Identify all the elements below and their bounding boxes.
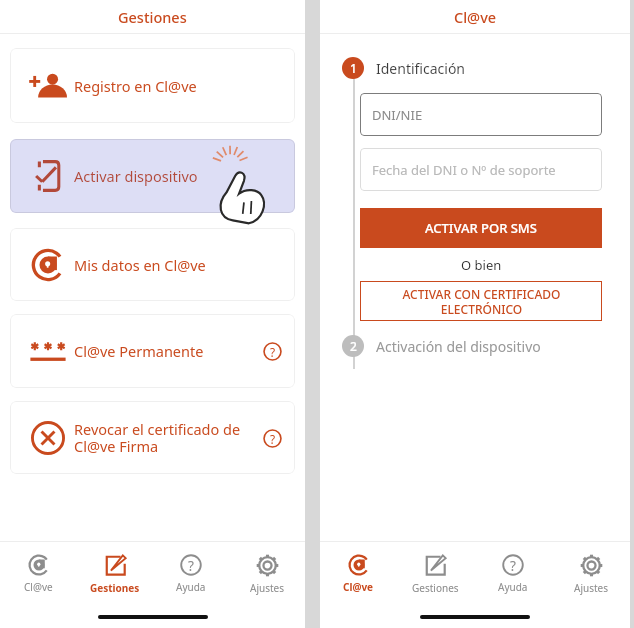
- staticText: Fecha del DNI o Nº de soporte: [372, 161, 556, 179]
- staticText: Activar dispositivo: [74, 166, 285, 186]
- staticText: 1: [350, 60, 357, 76]
- button[interactable]: Ayuda: [259, 425, 285, 451]
- staticText: Cl@ve: [343, 580, 374, 594]
- button[interactable]: Activar dispositivo: [10, 139, 295, 213]
- button[interactable]: ?: [153, 542, 229, 606]
- staticText: ?: [270, 431, 276, 447]
- staticText: O bien: [461, 256, 502, 274]
- staticText: ?: [188, 556, 194, 575]
- staticText: Cl@ve: [454, 7, 497, 27]
- button[interactable]: Ajustes: [229, 542, 305, 606]
- button[interactable]: Cl@ve: [320, 542, 397, 606]
- button[interactable]: Registro en Cl@ve: [10, 48, 295, 123]
- staticText: DNI/NIE: [372, 106, 423, 124]
- button[interactable]: Cl@ve Permanente: [10, 314, 295, 388]
- staticText: Gestiones: [90, 581, 140, 595]
- staticText: Gestiones: [118, 7, 187, 27]
- button[interactable]: Ayuda: [259, 338, 285, 364]
- staticText: Gestiones: [412, 581, 459, 595]
- button[interactable]: DNI/NIE: [360, 93, 602, 136]
- button[interactable]: ACTIVAR POR SMS: [360, 208, 602, 248]
- staticText: Ayuda: [498, 580, 528, 594]
- staticText: Activación del dispositivo: [376, 337, 541, 356]
- staticText: Mis datos en Cl@ve: [74, 255, 285, 275]
- staticText: Identificación: [376, 59, 466, 78]
- staticText: ACTIVAR POR SMS: [425, 219, 537, 237]
- button[interactable]: Ajustes: [552, 542, 630, 606]
- button[interactable]: ACTIVAR CON CERTIFICADO ELECTRÓNICO: [360, 281, 602, 321]
- staticText: Revocar el certificado de Cl@ve Firma: [74, 419, 259, 456]
- staticText: 2: [350, 338, 357, 354]
- staticText: Registro en Cl@ve: [74, 76, 285, 96]
- staticText: Ajustes: [250, 581, 284, 595]
- button[interactable]: Fecha del DNI o Nº de soporte: [360, 148, 602, 191]
- staticText: ?: [270, 344, 276, 360]
- button[interactable]: Gestiones: [77, 542, 153, 606]
- button[interactable]: ?: [474, 542, 552, 606]
- staticText: Cl@ve: [24, 580, 53, 594]
- staticText: ?: [510, 556, 516, 575]
- staticText: Ajustes: [574, 581, 608, 595]
- staticText: ACTIVAR CON CERTIFICADO ELECTRÓNICO: [402, 286, 561, 317]
- button[interactable]: Revocar el certificado de Cl@ve Firma: [10, 401, 295, 474]
- button[interactable]: Gestiones: [397, 542, 474, 606]
- button[interactable]: Mis datos en Cl@ve: [10, 228, 295, 301]
- staticText: Ayuda: [176, 580, 206, 594]
- staticText: Cl@ve Permanente: [74, 341, 259, 361]
- button[interactable]: Cl@ve: [0, 542, 77, 606]
